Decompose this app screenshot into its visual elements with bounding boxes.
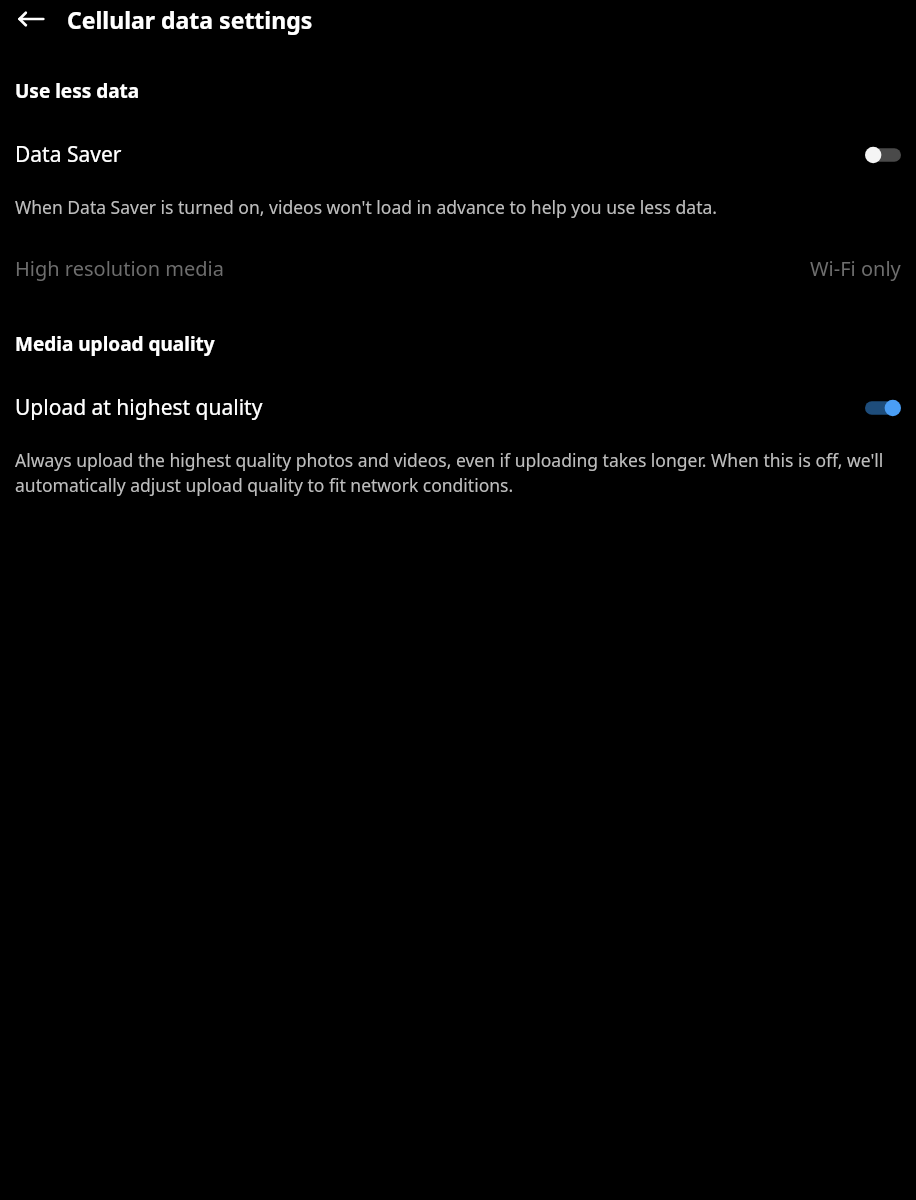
button[interactable]: Upload at highest quality: [0, 389, 916, 426]
staticText: Media upload quality: [15, 331, 215, 357]
staticText: Use less data: [15, 78, 140, 104]
staticText: When Data Saver is turned on, videos won…: [15, 195, 717, 219]
button[interactable]: Data Saver: [0, 136, 916, 173]
staticText: Upload at highest quality: [15, 393, 865, 422]
staticText: Wi-Fi only: [810, 255, 901, 282]
staticText: Always upload the highest quality photos…: [15, 448, 900, 497]
staticText: Data Saver: [15, 140, 865, 169]
button[interactable]: High resolution media: [0, 249, 916, 288]
button[interactable]: Back: [9, 0, 53, 38]
staticText: Cellular data settings: [67, 4, 313, 35]
staticText: High resolution media: [15, 255, 810, 282]
